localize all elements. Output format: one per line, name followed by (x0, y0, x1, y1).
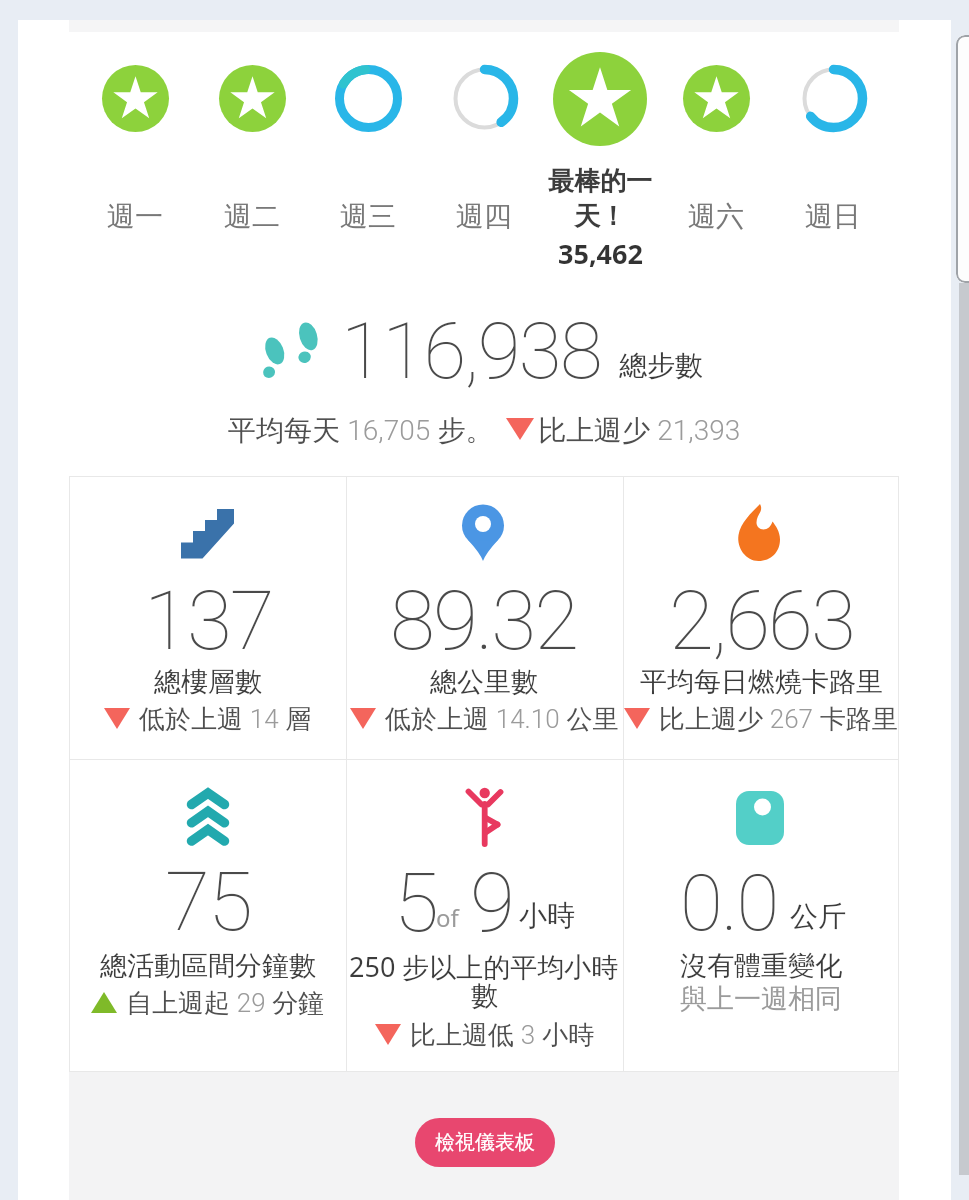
staticText: 總活動區間分鐘數 (100, 949, 316, 983)
staticText: 總步數 (619, 348, 703, 383)
staticText: 最棒的一 (548, 165, 652, 198)
staticText: 平均每天 16,705 步。 (228, 410, 494, 448)
staticText: 數 (471, 979, 498, 1013)
staticText: 137 (144, 573, 273, 669)
staticText: 週六 (688, 199, 744, 234)
button[interactable]: 檢視儀表板 (415, 1118, 555, 1167)
staticText: 9 (470, 855, 515, 951)
staticText: 35,462 (558, 235, 643, 269)
staticText: 與上一週相同 (680, 982, 842, 1016)
staticText: 116,938 (341, 306, 602, 397)
staticText: 總樓層數 (154, 665, 262, 699)
staticText: 小時 (519, 898, 575, 933)
staticText: 比上週少 21,393 (538, 410, 741, 448)
staticText: 低於上週 14 層 (139, 700, 312, 736)
staticText: 週一 (107, 199, 163, 234)
staticText: 89.32 (390, 573, 578, 669)
staticText: 週三 (340, 199, 396, 234)
staticText: 250 步以上的平均小時 (349, 948, 619, 985)
staticText: 2,663 (669, 573, 854, 669)
staticText: 週日 (805, 199, 861, 234)
staticText: 75 (165, 854, 251, 950)
staticText: 公斤 (790, 899, 846, 934)
staticText: 低於上週 14.10 公里 (385, 700, 619, 736)
staticText: 自上週起 29 分鐘 (126, 984, 325, 1020)
staticText: 週二 (224, 199, 280, 234)
staticText: 比上週少 267 卡路里 (659, 700, 898, 736)
staticText: 0.0 (680, 858, 778, 949)
staticText: of (436, 901, 459, 934)
staticText: 沒有體重變化 (680, 949, 842, 983)
staticText: 比上週低 3 小時 (410, 1016, 594, 1052)
staticText: 天！ (574, 200, 626, 233)
staticText: 檢視儀表板 (435, 1130, 535, 1155)
staticText: 5 (394, 855, 439, 951)
staticText: 總公里數 (430, 665, 538, 699)
staticText: 週四 (456, 199, 512, 234)
staticText: 平均每日燃燒卡路里 (640, 665, 883, 699)
